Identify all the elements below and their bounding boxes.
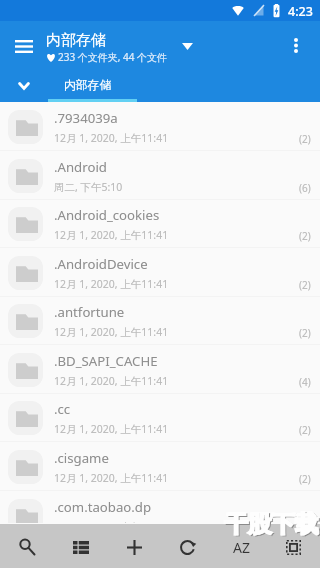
button[interactable]: .antfortune <box>0 296 320 345</box>
button[interactable]: .cisgame <box>0 442 320 491</box>
staticText: .cisgame <box>54 449 294 467</box>
staticText: (2) <box>299 278 311 292</box>
button[interactable]: Search <box>0 524 52 568</box>
staticText: 4:23 <box>288 3 313 20</box>
button[interactable]: More options <box>278 27 314 63</box>
staticText: .BD_SAPI_CACHE <box>54 352 294 370</box>
staticText: .com.taobao.dp <box>54 498 294 516</box>
staticText: 干股下载 <box>226 510 320 540</box>
staticText: 233 个文件夹, 44 个文件 <box>58 50 168 64</box>
staticText: .Android <box>54 158 294 176</box>
staticText: (2) <box>299 132 311 146</box>
staticText: .cc <box>54 400 294 418</box>
button[interactable]: .Android <box>0 151 320 200</box>
staticText: 周二, 下午5:10 <box>54 180 123 194</box>
staticText: 12月 1, 2020, 上午11:41 <box>54 471 169 485</box>
staticText: .antfortune <box>54 303 294 321</box>
staticText: 干股下载 <box>224 509 318 539</box>
button[interactable]: List view <box>55 524 107 568</box>
button[interactable]: Change sort order <box>175 35 199 57</box>
staticText: 12月 1, 2020, 上午11:41 <box>54 277 169 291</box>
staticText: 12月 1, 2020, 上午11:41 <box>54 422 169 436</box>
staticText: 12月 1, 2020, 上午11:41 <box>54 325 169 339</box>
staticText: (6) <box>299 181 311 195</box>
button[interactable]: Add <box>108 524 160 568</box>
staticText: .Android_cookies <box>54 206 294 224</box>
button[interactable]: .cc <box>0 393 320 442</box>
button[interactable]: Refresh <box>161 524 213 568</box>
staticText: .7934039a <box>54 109 294 127</box>
button[interactable]: .AndroidDevice <box>0 248 320 297</box>
staticText: 干股下载 <box>225 509 319 539</box>
button[interactable]: Select <box>267 524 319 568</box>
staticText: (2) <box>299 423 311 437</box>
staticText: (2) <box>299 472 311 486</box>
staticText: (2) <box>299 229 311 243</box>
button[interactable]: .7934039a <box>0 102 320 151</box>
staticText: 12月 1, 2020, 上午11:41 <box>54 228 169 242</box>
staticText: (4) <box>299 375 311 389</box>
button[interactable]: Sort A to Z <box>215 524 267 568</box>
button[interactable]: .Android_cookies <box>0 199 320 248</box>
staticText: AZ <box>233 538 250 557</box>
button[interactable]: 内部存储 <box>44 68 132 102</box>
staticText: 12月 1, 2020, 上午11:41 <box>54 131 169 145</box>
button[interactable]: Expand path <box>7 68 41 102</box>
staticText: (2) <box>299 326 311 340</box>
staticText: 内部存储 <box>46 31 106 50</box>
staticText: 12月 1, 2020, 上午11:41 <box>54 374 169 388</box>
button[interactable]: .com.taobao.dp <box>0 491 320 523</box>
staticText: .AndroidDevice <box>54 255 294 273</box>
staticText: 内部存储 <box>64 78 112 93</box>
button[interactable]: .BD_SAPI_CACHE <box>0 345 320 394</box>
button[interactable]: Navigation menu <box>6 27 42 63</box>
